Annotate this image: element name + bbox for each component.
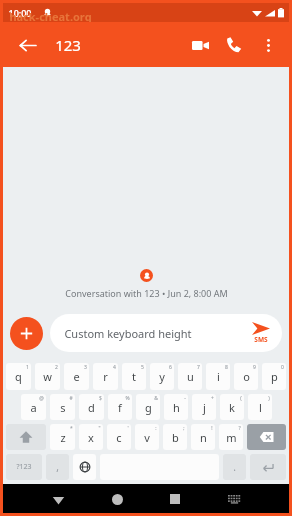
button[interactable]: Home — [104, 486, 130, 512]
staticText: i — [217, 369, 220, 384]
staticText: , — [56, 460, 59, 474]
button[interactable]: q — [6, 363, 31, 390]
button[interactable]: o — [234, 363, 258, 390]
button[interactable]: More options — [251, 28, 285, 62]
button[interactable]: Shift — [6, 424, 46, 450]
button[interactable]: e — [64, 363, 89, 390]
staticText: h — [173, 400, 180, 415]
staticText: v — [144, 430, 150, 445]
staticText: q — [15, 369, 22, 384]
staticText: 3 — [84, 364, 87, 371]
button[interactable]: , — [46, 454, 69, 480]
staticText: r — [103, 369, 108, 384]
button[interactable]: ?123 — [6, 454, 42, 480]
button[interactable]: Back — [11, 29, 43, 61]
button[interactable]: u — [178, 363, 202, 390]
staticText: + — [211, 395, 214, 402]
button[interactable]: k — [220, 394, 244, 420]
button[interactable]: x — [79, 424, 103, 450]
staticText: ; — [183, 425, 185, 432]
staticText: c — [116, 430, 122, 445]
staticText: a — [30, 400, 37, 415]
staticText: w — [43, 369, 52, 384]
staticText: hack-cheat.org — [9, 9, 92, 22]
staticText: o — [243, 369, 250, 384]
button[interactable]: d — [79, 394, 104, 420]
button[interactable]: n — [191, 424, 215, 450]
button[interactable]: Send SMS — [252, 322, 270, 344]
staticText: z — [60, 430, 66, 445]
staticText: k — [229, 400, 235, 415]
button[interactable]: h — [164, 394, 188, 420]
staticText: 5 — [141, 364, 144, 371]
staticText: 123 — [55, 35, 81, 55]
button[interactable]: Hide keyboard — [221, 486, 247, 512]
staticText: 4 — [113, 364, 116, 371]
button[interactable]: c — [107, 424, 131, 450]
button[interactable]: Video call — [183, 28, 217, 62]
button[interactable]: Back — [45, 486, 71, 512]
staticText: j — [203, 400, 206, 415]
staticText: : — [155, 425, 157, 432]
button[interactable]: Change language — [73, 454, 96, 480]
button[interactable]: f — [108, 394, 132, 420]
staticText: m — [226, 430, 237, 445]
button[interactable]: l — [248, 394, 272, 420]
button[interactable]: v — [135, 424, 159, 450]
button[interactable]: Add attachment — [10, 317, 43, 350]
staticText: - — [184, 395, 186, 402]
staticText: 7 — [197, 364, 200, 371]
staticText: d — [88, 400, 95, 415]
button[interactable]: . — [223, 454, 246, 480]
staticText: $ — [99, 395, 102, 402]
staticText: u — [187, 369, 194, 384]
button[interactable]: z — [50, 424, 75, 450]
staticText: 0 — [281, 364, 284, 371]
staticText: b — [172, 430, 179, 445]
staticText: ( — [240, 395, 242, 402]
button[interactable]: Recents — [162, 486, 188, 512]
staticText: g — [145, 400, 152, 415]
staticText: 9 — [253, 364, 256, 371]
button[interactable]: Enter — [250, 454, 286, 480]
staticText: Custom keyboard height — [64, 326, 192, 341]
button[interactable]: g — [136, 394, 160, 420]
staticText: " — [98, 425, 101, 432]
staticText: 2 — [55, 364, 58, 371]
staticText: SMS — [254, 335, 268, 344]
button[interactable]: i — [206, 363, 230, 390]
button[interactable]: Call — [217, 28, 251, 62]
button[interactable]: s — [50, 394, 75, 420]
staticText: l — [259, 400, 262, 415]
button[interactable]: j — [192, 394, 216, 420]
button[interactable]: y — [150, 363, 174, 390]
staticText: n — [200, 430, 207, 445]
staticText: f — [118, 400, 122, 415]
staticText: . — [233, 460, 236, 474]
staticText: % — [125, 395, 130, 402]
button[interactable]: m — [219, 424, 243, 450]
staticText: Conversation with 123 • Jun 2, 8:00 AM — [65, 287, 228, 299]
staticText: t — [132, 369, 136, 384]
button[interactable]: w — [35, 363, 60, 390]
button[interactable]: r — [93, 363, 118, 390]
staticText: ! — [211, 425, 213, 432]
button[interactable]: p — [262, 363, 286, 390]
staticText: ? — [238, 425, 241, 432]
staticText: ?123 — [16, 462, 32, 472]
staticText: e — [73, 369, 80, 384]
button[interactable]: t — [122, 363, 146, 390]
staticText: x — [88, 430, 94, 445]
staticText: 8 — [225, 364, 228, 371]
staticText: # — [69, 395, 73, 402]
staticText: 10:00 — [8, 7, 32, 19]
staticText: p — [271, 369, 278, 384]
button[interactable]: Custom keyboard height — [50, 314, 282, 352]
staticText: * — [70, 425, 73, 432]
button[interactable]: b — [163, 424, 187, 450]
staticText: y — [159, 369, 165, 384]
staticText: @ — [39, 395, 44, 402]
button[interactable]: a — [21, 394, 46, 420]
button[interactable]: Backspace — [247, 424, 286, 450]
